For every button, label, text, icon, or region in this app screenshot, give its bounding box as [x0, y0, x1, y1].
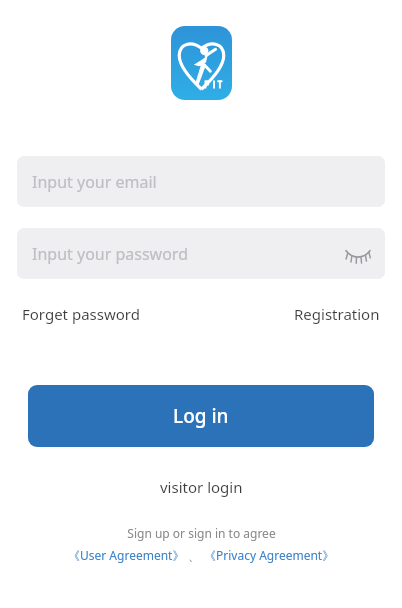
staticText: 《User Agreement》	[68, 547, 185, 563]
button[interactable]: Input your password	[17, 228, 385, 279]
staticText: Input your email	[32, 171, 157, 193]
button[interactable]: Show password	[339, 235, 377, 273]
button[interactable]: 《Privacy Agreement》	[204, 547, 335, 563]
button[interactable]: Log in	[28, 385, 374, 447]
other: FIT logo	[171, 26, 232, 100]
staticText: Input your password	[32, 243, 189, 265]
button[interactable]: 《User Agreement》	[68, 547, 185, 563]
staticText: 《Privacy Agreement》	[204, 547, 335, 563]
staticText: Sign up or sign in to agree	[127, 525, 276, 541]
staticText: Forget password	[22, 304, 140, 324]
staticText: 、	[185, 547, 204, 563]
staticText: Registration	[294, 304, 380, 324]
staticText: Log in	[173, 403, 229, 429]
button[interactable]: Registration	[294, 304, 380, 324]
button[interactable]: Forget password	[22, 304, 140, 324]
staticText: visitor login	[160, 477, 243, 497]
button[interactable]: Input your email	[17, 156, 385, 207]
button[interactable]: visitor login	[150, 474, 253, 500]
